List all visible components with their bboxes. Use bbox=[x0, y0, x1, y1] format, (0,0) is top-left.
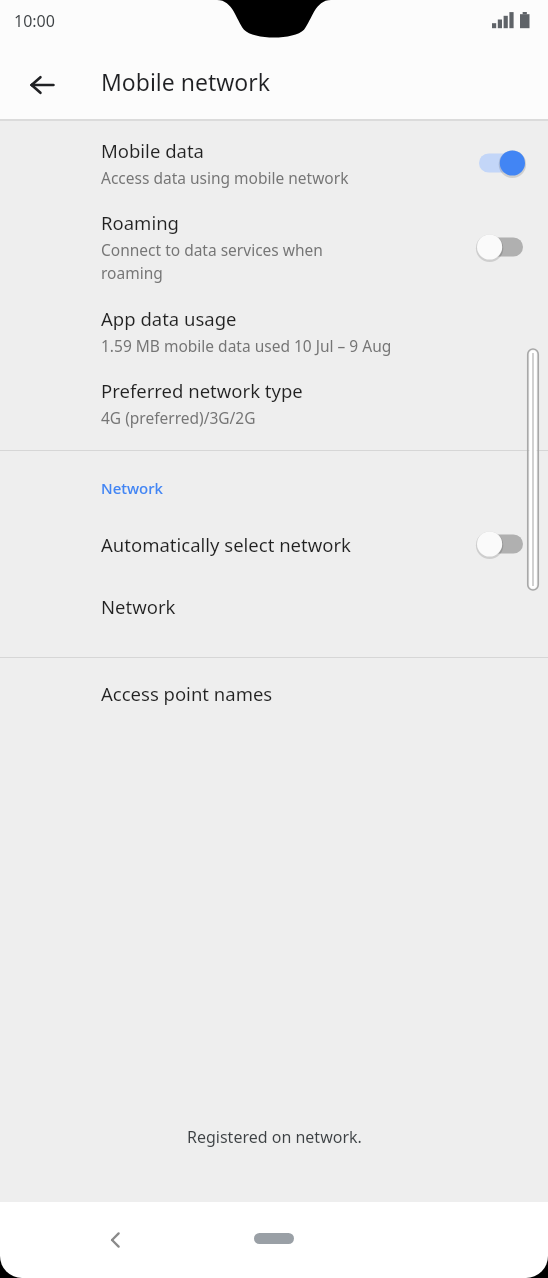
staticText: Access point names bbox=[101, 681, 273, 706]
button[interactable]: Off bbox=[470, 227, 532, 267]
staticText: Preferred network type bbox=[101, 378, 303, 403]
staticText: 1.59 MB mobile data used 10 Jul – 9 Aug bbox=[101, 335, 392, 356]
staticText: Connect to data services when roaming bbox=[101, 239, 323, 284]
staticText: Roaming bbox=[101, 210, 179, 235]
button[interactable]: Network bbox=[0, 594, 548, 619]
button[interactable]: Access point names bbox=[0, 681, 548, 706]
staticText: App data usage bbox=[101, 306, 237, 331]
staticText: Network bbox=[101, 594, 176, 619]
button[interactable]: Preferred network type bbox=[0, 378, 548, 428]
staticText: Access data using mobile network bbox=[101, 167, 349, 188]
button[interactable]: Roaming bbox=[0, 210, 548, 284]
button[interactable]: App data usage bbox=[0, 306, 548, 356]
staticText: Mobile network bbox=[101, 66, 271, 97]
staticText: Mobile data bbox=[101, 138, 204, 163]
button[interactable]: Automatically select network bbox=[0, 524, 548, 564]
button[interactable]: Home bbox=[239, 1223, 309, 1253]
button[interactable]: Mobile data bbox=[0, 138, 548, 188]
staticText: Registered on network. bbox=[187, 1126, 362, 1148]
button[interactable]: Back bbox=[92, 1216, 140, 1264]
button[interactable]: Back bbox=[14, 57, 70, 113]
staticText: 10:00 bbox=[14, 10, 55, 32]
button[interactable]: Off bbox=[470, 524, 532, 564]
staticText: Network bbox=[101, 478, 163, 498]
staticText: Automatically select network bbox=[101, 532, 351, 557]
button[interactable]: On bbox=[470, 143, 532, 183]
staticText: 4G (preferred)/3G/2G bbox=[101, 407, 256, 428]
